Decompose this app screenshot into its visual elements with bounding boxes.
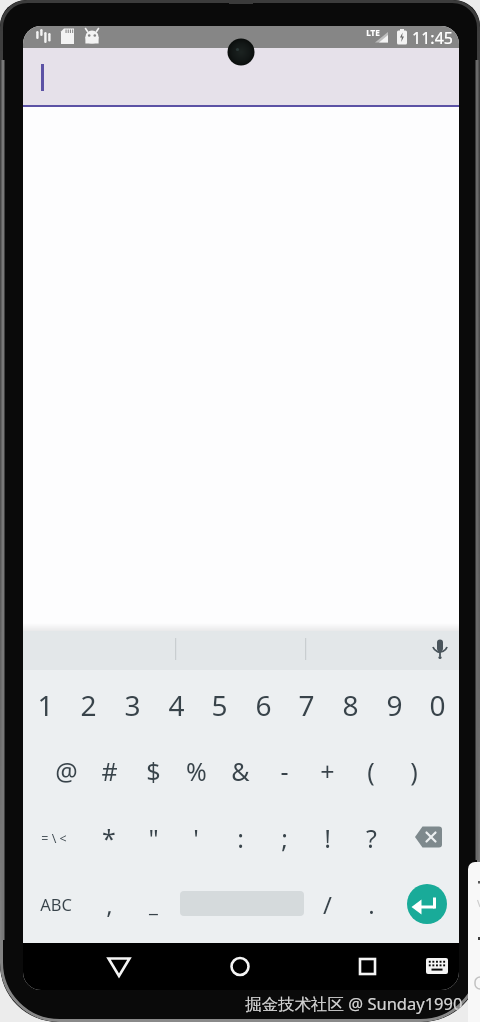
staticText: 5 bbox=[211, 686, 228, 724]
button[interactable]: ; bbox=[260, 813, 308, 863]
button[interactable]: 4 bbox=[152, 680, 200, 730]
button[interactable] bbox=[97, 951, 141, 983]
staticText: : bbox=[237, 821, 244, 855]
button[interactable] bbox=[407, 884, 447, 924]
button[interactable] bbox=[345, 951, 389, 983]
staticText: ABC bbox=[40, 893, 72, 915]
button[interactable]: 2 bbox=[64, 680, 112, 730]
button[interactable]: 9 bbox=[370, 680, 418, 730]
staticText: * bbox=[102, 821, 116, 855]
staticText: 8 bbox=[342, 686, 359, 724]
button[interactable]: 8 bbox=[326, 680, 374, 730]
button[interactable]: $ bbox=[129, 746, 177, 796]
button[interactable]: + bbox=[303, 746, 351, 796]
button[interactable]: / bbox=[303, 879, 351, 929]
button[interactable]: 5 bbox=[195, 680, 243, 730]
button[interactable]: 3 bbox=[108, 680, 156, 730]
button[interactable]: , bbox=[85, 879, 133, 929]
button[interactable]: : bbox=[216, 813, 264, 863]
staticText: $ bbox=[146, 754, 161, 788]
button[interactable]: & bbox=[216, 746, 264, 796]
button[interactable]: _ bbox=[129, 879, 177, 929]
button[interactable]: ' bbox=[172, 813, 220, 863]
button[interactable]: = \ < bbox=[28, 813, 80, 863]
button[interactable]: # bbox=[85, 746, 133, 796]
button[interactable] bbox=[424, 634, 456, 666]
staticText: " bbox=[148, 821, 159, 855]
button[interactable]: ( bbox=[347, 746, 395, 796]
staticText: 9 bbox=[386, 686, 403, 724]
staticText: 4 bbox=[168, 686, 185, 724]
staticText: _ bbox=[149, 891, 158, 918]
staticText: / bbox=[323, 888, 332, 921]
staticText: = \ < bbox=[41, 830, 67, 847]
staticText: 1 bbox=[37, 686, 54, 724]
staticText: LTE bbox=[366, 27, 380, 38]
staticText: 11:45 bbox=[412, 27, 453, 47]
staticText: & bbox=[231, 754, 250, 788]
button[interactable]: . bbox=[347, 879, 395, 929]
staticText: - bbox=[280, 754, 289, 788]
staticText: ( bbox=[367, 754, 375, 788]
button[interactable]: 1 bbox=[23, 680, 69, 730]
staticText: ! bbox=[324, 821, 331, 855]
staticText: ? bbox=[366, 821, 377, 855]
button[interactable] bbox=[218, 951, 262, 983]
staticText: % bbox=[186, 754, 207, 788]
staticText: , bbox=[106, 888, 113, 921]
staticText: ' bbox=[193, 821, 199, 855]
button[interactable]: " bbox=[129, 813, 177, 863]
button[interactable]: 6 bbox=[239, 680, 287, 730]
staticText: # bbox=[101, 754, 118, 788]
button[interactable]: - bbox=[260, 746, 308, 796]
button[interactable] bbox=[413, 824, 445, 850]
staticText: . bbox=[368, 888, 375, 921]
button[interactable] bbox=[23, 48, 459, 106]
staticText: 7 bbox=[298, 686, 315, 724]
staticText: ; bbox=[281, 821, 288, 855]
button[interactable]: ? bbox=[347, 813, 395, 863]
button[interactable]: ABC bbox=[30, 879, 82, 929]
staticText: 2 bbox=[80, 686, 97, 724]
staticText: + bbox=[320, 754, 335, 788]
button[interactable]: 0 bbox=[413, 680, 459, 730]
button[interactable]: ) bbox=[390, 746, 438, 796]
button[interactable]: ! bbox=[303, 813, 351, 863]
staticText: 0 bbox=[429, 686, 446, 724]
staticText: 掘金技术社区 @ Sunday1990 bbox=[245, 992, 463, 1015]
button[interactable] bbox=[415, 951, 459, 983]
staticText: 3 bbox=[124, 686, 141, 724]
staticText: @ bbox=[55, 754, 78, 788]
staticText: ) bbox=[410, 754, 418, 788]
button[interactable]: @ bbox=[42, 746, 90, 796]
button[interactable]: 7 bbox=[282, 680, 330, 730]
button[interactable]: % bbox=[172, 746, 220, 796]
staticText: 6 bbox=[255, 686, 272, 724]
button[interactable]: * bbox=[85, 813, 133, 863]
